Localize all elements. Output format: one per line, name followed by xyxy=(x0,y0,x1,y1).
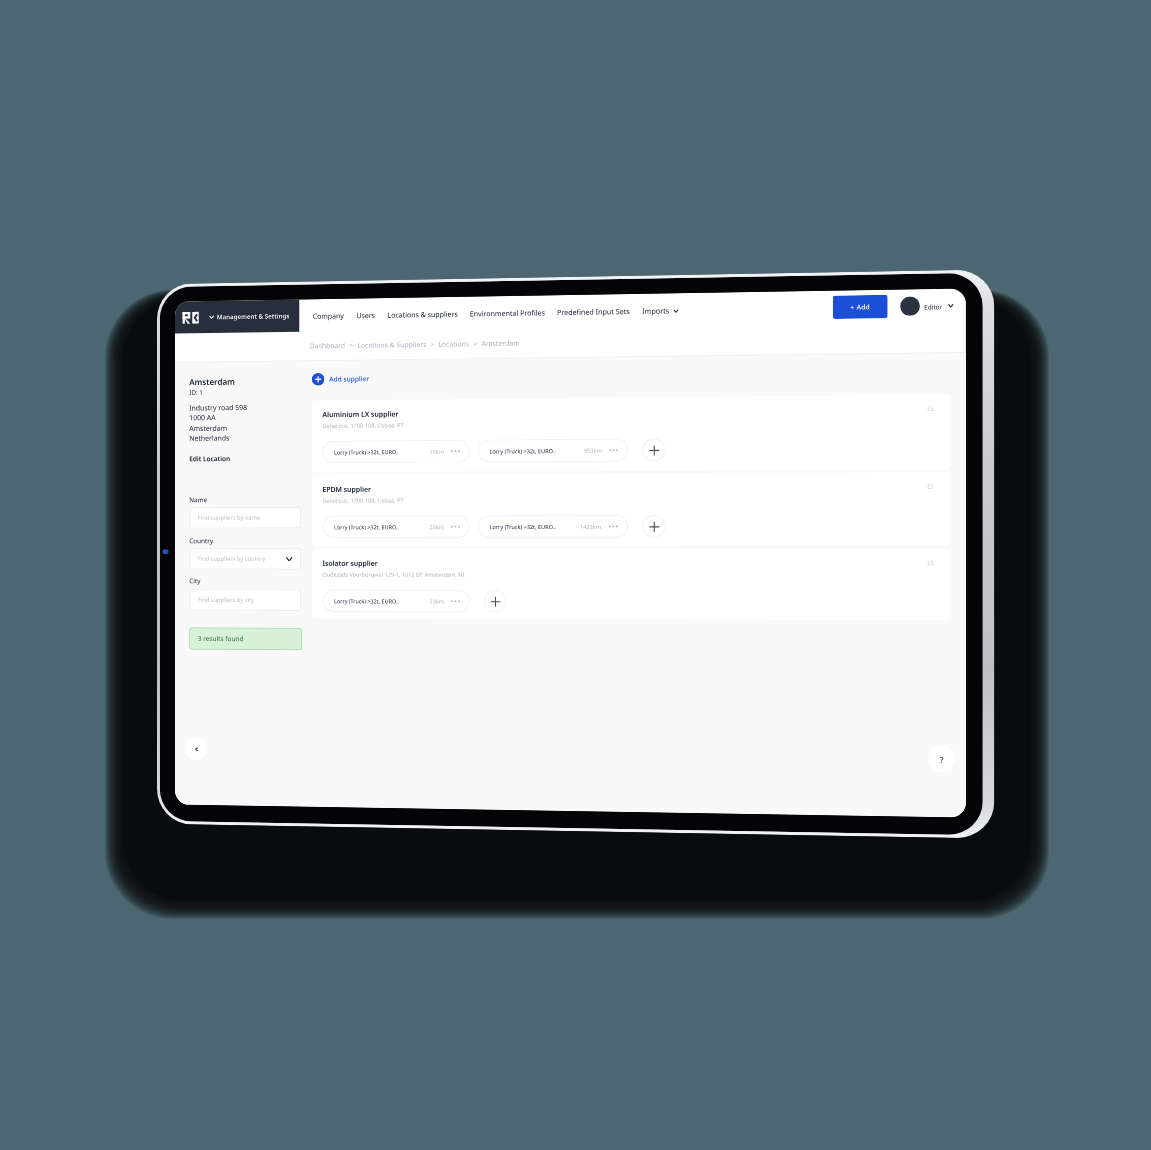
button[interactable]: Add supplier xyxy=(312,372,376,386)
staticText: 23km xyxy=(429,523,444,531)
staticText: 1423km xyxy=(580,523,602,531)
staticText: Name xyxy=(189,495,207,504)
staticText: ES xyxy=(927,482,934,490)
button[interactable]: Lorry (Truck) >32t, EURO.. xyxy=(322,589,470,613)
staticText: Amsterdam xyxy=(189,376,235,387)
staticText: Management & Settings xyxy=(217,311,290,321)
button[interactable]: Aluminium LX supplier xyxy=(312,394,951,472)
staticText: Lorry (Truck) >32t, EURO.. xyxy=(334,523,399,531)
staticText: Lorry (Truck) >32t, EURO.. xyxy=(334,448,399,456)
staticText: Find suppliers by country xyxy=(198,555,266,563)
staticText: Company xyxy=(313,310,345,321)
button[interactable]: Add transport xyxy=(642,515,665,538)
staticText: Find suppliers by name xyxy=(198,514,261,522)
staticText: City xyxy=(189,576,201,585)
staticText: ES xyxy=(927,405,934,413)
button[interactable]: Locations & suppliers xyxy=(382,302,464,327)
button[interactable]: Back xyxy=(185,737,207,760)
button[interactable]: + xyxy=(833,295,888,319)
button[interactable]: Users xyxy=(350,303,382,327)
staticText: > xyxy=(470,339,482,349)
button[interactable]: Add transport xyxy=(642,438,665,462)
button[interactable]: Locations & Suppliers xyxy=(357,340,427,351)
button[interactable]: Add transport xyxy=(484,590,506,613)
staticText: 3 results found xyxy=(198,634,244,643)
button[interactable]: Lorry (Truck) >32t, EURO.. xyxy=(322,440,470,463)
staticText: Amsterdam xyxy=(189,423,227,433)
staticText: 1000 AA xyxy=(189,412,216,422)
staticText: Imports xyxy=(642,305,669,316)
button[interactable]: Amsterdam xyxy=(482,339,520,349)
staticText: Lorry (Truck) >32t, EURO.. xyxy=(334,597,399,605)
staticText: Generous, 1700-108, Lisboa, PT xyxy=(322,421,404,430)
staticText: 23km xyxy=(429,448,444,456)
staticText: ? xyxy=(940,754,944,765)
button[interactable]: Environmental Profiles xyxy=(464,300,551,325)
button[interactable]: 3 results found xyxy=(189,627,302,650)
staticText: + xyxy=(850,303,854,312)
staticText: Find suppliers by city xyxy=(198,596,254,604)
button[interactable]: Company xyxy=(307,303,350,328)
staticText: Industry road 598 xyxy=(189,402,247,412)
staticText: Lorry (Truck) >32t, EURO.. xyxy=(490,523,556,531)
staticText: Environmental Profiles xyxy=(470,307,545,318)
staticText: 23km xyxy=(429,598,444,606)
staticText: Add xyxy=(857,302,870,312)
button[interactable]: Locations xyxy=(438,339,470,350)
staticText: Generous, 1700-108, Lisboa, PT xyxy=(322,497,404,505)
staticText: 953km xyxy=(584,447,602,455)
staticText: Lorry (Truck) >32t, EURO.. xyxy=(490,447,556,455)
button[interactable]: Help xyxy=(928,745,955,772)
button[interactable]: Find suppliers by name xyxy=(189,507,301,529)
button[interactable]: Editor xyxy=(900,296,953,316)
button[interactable]: Lorry (Truck) >32t, EURO.. xyxy=(322,515,470,538)
button[interactable]: Isolator supplier xyxy=(312,549,951,621)
button[interactable]: Find suppliers by country xyxy=(189,548,301,570)
staticText: > xyxy=(427,340,438,350)
staticText: Predefined Input Sets xyxy=(557,306,630,317)
button[interactable]: Lorry (Truck) >32t, EURO.. xyxy=(478,515,628,538)
staticText: ID: 1 xyxy=(189,388,203,397)
button[interactable]: Edit Location xyxy=(189,453,231,464)
staticText: ES xyxy=(927,559,934,567)
staticText: > xyxy=(346,341,357,351)
button[interactable]: Find suppliers by city xyxy=(189,589,301,611)
staticText: Users xyxy=(356,310,376,320)
staticText: Locations & suppliers xyxy=(387,309,458,320)
button[interactable]: Predefined Input Sets xyxy=(551,299,636,324)
button[interactable]: Management & Settings xyxy=(175,299,299,334)
staticText: Isolator supplier xyxy=(322,558,378,568)
staticText: Add supplier xyxy=(329,374,370,384)
button[interactable]: Lorry (Truck) >32t, EURO.. xyxy=(478,438,628,462)
staticText: EPDM supplier xyxy=(322,484,372,494)
staticText: Edit Location xyxy=(189,454,231,463)
button[interactable]: EPDM supplier xyxy=(312,472,951,546)
staticText: Netherlands xyxy=(189,433,230,443)
staticText: Editor xyxy=(924,302,943,311)
button[interactable]: Dashboard xyxy=(310,341,346,351)
button[interactable]: Imports xyxy=(636,298,685,323)
staticText: Oudezijds Voorburgwal 129-1, 1012 EP, Am… xyxy=(322,571,466,579)
staticText: Country xyxy=(189,536,214,545)
staticText: Aluminium LX supplier xyxy=(322,408,399,419)
